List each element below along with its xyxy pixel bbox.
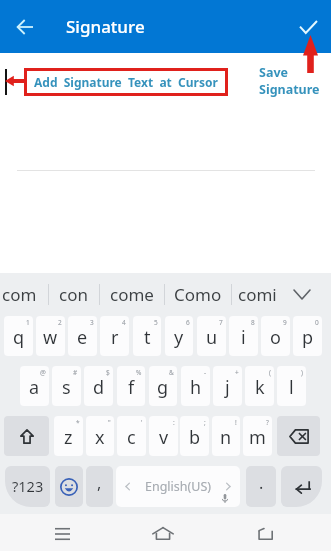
button[interactable]: p: [293, 316, 322, 356]
staticText: comin: [238, 283, 288, 306]
button[interactable]: com: [0, 273, 48, 316]
staticText: e: [77, 325, 88, 350]
staticText: f: [128, 375, 135, 400]
button[interactable]: c: [117, 416, 146, 456]
button[interactable]: l: [277, 366, 306, 406]
button[interactable]: Emoji: [55, 466, 83, 507]
button[interactable]: Home: [142, 514, 184, 551]
button[interactable]: Save signature: [286, 5, 330, 49]
button[interactable]: comin: [231, 273, 295, 316]
button[interactable]: g: [149, 366, 177, 406]
staticText: ?123: [12, 476, 44, 496]
button[interactable]: Shift: [4, 416, 49, 456]
button[interactable]: f: [117, 366, 145, 406]
button[interactable]: q: [4, 316, 33, 356]
button[interactable]: come: [99, 273, 164, 316]
button[interactable]: .: [246, 466, 276, 507]
button[interactable]: j: [213, 366, 242, 406]
button[interactable]: Add Signature Text at Cursor: [27, 71, 225, 93]
staticText: .: [259, 472, 264, 494]
staticText: g: [157, 375, 169, 400]
staticText: p: [302, 325, 314, 350]
staticText: r: [111, 325, 119, 350]
staticText: z: [64, 425, 73, 450]
staticText: com: [2, 283, 37, 306]
button[interactable]: y: [165, 316, 193, 356]
button[interactable]: con: [48, 273, 99, 316]
button[interactable]: b: [180, 416, 209, 456]
staticText: v: [159, 425, 169, 450]
staticText: u: [206, 325, 218, 350]
staticText: come: [110, 283, 154, 306]
staticText: Signature: [259, 81, 320, 98]
staticText: %: [136, 368, 142, 377]
button[interactable]: r: [100, 316, 129, 356]
staticText: 5: [154, 318, 158, 327]
button[interactable]: Back: [2, 4, 48, 50]
button[interactable]: h: [181, 366, 210, 406]
staticText: -: [204, 368, 207, 377]
staticText: Save: [259, 64, 288, 81]
button[interactable]: Back: [243, 514, 285, 551]
staticText: c: [127, 425, 136, 450]
button[interactable]: ,: [86, 466, 113, 507]
staticText: j: [225, 375, 230, 400]
button[interactable]: Enter: [281, 466, 322, 507]
staticText: 1: [26, 318, 30, 327]
staticText: t: [144, 325, 151, 350]
staticText: ;: [204, 418, 206, 427]
staticText: 7: [219, 318, 223, 327]
button[interactable]: Como: [164, 273, 231, 316]
button[interactable]: n: [212, 416, 240, 456]
button[interactable]: Backspace: [277, 416, 320, 456]
staticText: b: [189, 425, 201, 450]
button[interactable]: a: [20, 366, 49, 406]
button[interactable]: Recent apps: [41, 514, 83, 551]
button[interactable]: m: [243, 416, 272, 456]
staticText: o: [270, 325, 281, 350]
button[interactable]: v: [149, 416, 178, 456]
staticText: $: [106, 368, 110, 377]
staticText: a: [29, 375, 40, 400]
staticText: l: [289, 375, 294, 400]
staticText: :: [173, 418, 175, 427]
button[interactable]: English(US): [116, 466, 240, 507]
staticText: 4: [122, 318, 126, 327]
staticText: ": [108, 418, 111, 427]
button[interactable]: d: [84, 366, 113, 406]
staticText: h: [190, 375, 202, 400]
staticText: ': [141, 418, 143, 427]
staticText: q: [13, 325, 25, 350]
button[interactable]: s: [52, 366, 81, 406]
button[interactable]: x: [86, 416, 114, 456]
button[interactable]: w: [36, 316, 65, 356]
staticText: +: [235, 368, 239, 377]
staticText: con: [59, 283, 88, 306]
staticText: 2: [58, 318, 62, 327]
staticText: m: [249, 425, 266, 450]
button[interactable]: i: [229, 316, 258, 356]
button[interactable]: o: [261, 316, 290, 356]
staticText: y: [174, 325, 184, 350]
staticText: ,: [97, 472, 102, 494]
button[interactable]: e: [68, 316, 97, 356]
staticText: Signature: [66, 15, 145, 38]
staticText: n: [220, 425, 232, 450]
button[interactable]: u: [197, 316, 226, 356]
staticText: ?: [266, 418, 269, 427]
button[interactable]: ?123: [5, 466, 50, 507]
staticText: x: [95, 425, 105, 450]
staticText: w: [43, 325, 58, 350]
button[interactable]: t: [133, 316, 161, 356]
button[interactable]: k: [245, 366, 274, 406]
staticText: @: [40, 368, 46, 377]
staticText: i: [241, 325, 246, 350]
button[interactable]: Save: [259, 64, 320, 98]
staticText: d: [93, 375, 105, 400]
staticText: k: [255, 375, 265, 400]
button[interactable]: z: [54, 416, 83, 456]
staticText: 9: [283, 318, 287, 327]
staticText: !: [235, 418, 237, 427]
staticText: 3: [90, 318, 94, 327]
button[interactable]: More suggestions: [287, 273, 317, 316]
